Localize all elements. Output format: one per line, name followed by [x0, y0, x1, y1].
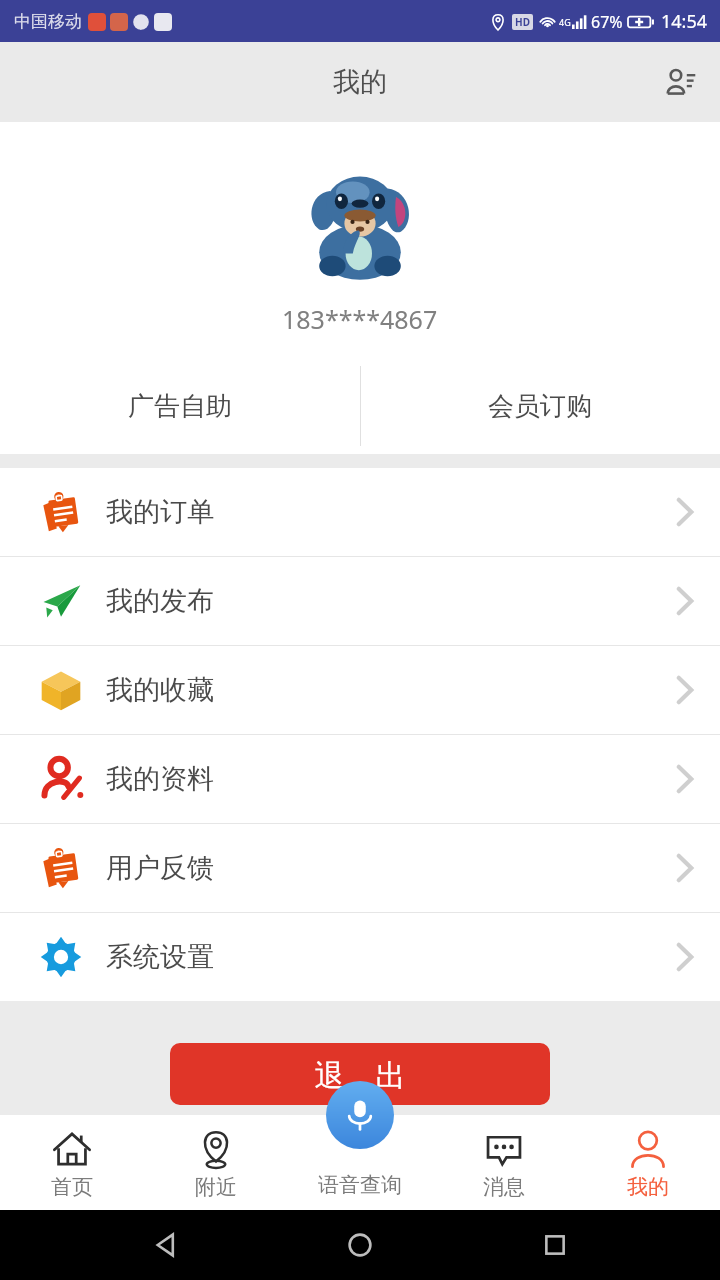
button[interactable]: 我的订单	[0, 468, 720, 556]
button[interactable]: Account	[654, 56, 706, 108]
staticText: 67%	[591, 11, 623, 33]
button[interactable]: Home	[330, 1215, 390, 1275]
staticText: 我的	[627, 1174, 669, 1200]
button[interactable]: 我的收藏	[0, 646, 720, 734]
staticText: 消息	[483, 1174, 525, 1200]
button[interactable]: 广告自助	[0, 358, 360, 454]
button[interactable]: 退 出	[170, 1043, 550, 1105]
staticText: 我的订单	[106, 495, 214, 529]
staticText: 用户反馈	[106, 851, 214, 885]
button[interactable]: Avatar	[299, 166, 421, 288]
staticText: 会员订购	[488, 390, 592, 423]
staticText: 附近	[195, 1174, 237, 1200]
staticText: 我的发布	[106, 584, 214, 618]
button[interactable]: 我的发布	[0, 557, 720, 645]
staticText: 广告自助	[128, 390, 232, 423]
staticText: HD	[515, 15, 530, 29]
button[interactable]: 会员订购	[360, 358, 720, 454]
staticText: 首页	[51, 1174, 93, 1200]
button[interactable]: Back	[135, 1215, 195, 1275]
staticText: 我的资料	[106, 762, 214, 796]
button[interactable]: 用户反馈	[0, 824, 720, 912]
staticText: 退 出	[314, 1054, 406, 1095]
button[interactable]: 附近	[144, 1115, 288, 1210]
button[interactable]: 首页	[0, 1115, 144, 1210]
button[interactable]: Recents	[525, 1215, 585, 1275]
staticText: 4G	[559, 16, 571, 28]
button[interactable]: Voice search	[326, 1081, 394, 1149]
staticText: 我的	[333, 65, 387, 99]
button[interactable]: 我的资料	[0, 735, 720, 823]
button[interactable]: 我的	[576, 1115, 720, 1210]
staticText: 14:54	[661, 9, 708, 34]
staticText: 系统设置	[106, 940, 214, 974]
staticText: 语音查询	[318, 1172, 402, 1198]
button[interactable]: 消息	[432, 1115, 576, 1210]
staticText: 183****4867	[282, 302, 438, 336]
button[interactable]: 系统设置	[0, 913, 720, 1001]
staticText: 我的收藏	[106, 673, 214, 707]
staticText: 中国移动	[14, 11, 82, 32]
